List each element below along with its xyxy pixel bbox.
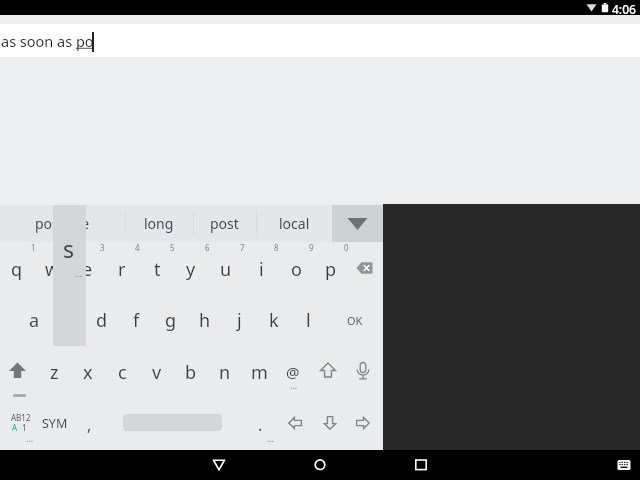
staticText: 8 [274, 242, 279, 253]
staticText: @ [286, 362, 300, 382]
button[interactable]: AB12 [4, 411, 40, 435]
button[interactable]: u [206, 254, 246, 284]
button[interactable] [312, 450, 328, 480]
button[interactable] [354, 260, 376, 276]
button[interactable]: z [34, 357, 74, 387]
button[interactable]: long [125, 205, 193, 242]
staticText: a [29, 308, 40, 333]
staticText: local [279, 214, 310, 233]
staticText: g [165, 308, 177, 333]
button[interactable]: post [193, 205, 256, 242]
staticText: v [152, 360, 162, 385]
button[interactable] [7, 361, 28, 401]
staticText: d [96, 308, 108, 333]
button[interactable]: g [151, 305, 191, 335]
button[interactable]: m [239, 357, 279, 387]
button[interactable] [413, 450, 429, 480]
staticText: n [219, 360, 231, 385]
button[interactable]: f [116, 305, 156, 335]
button[interactable]: p [311, 254, 351, 284]
button[interactable]: local [256, 205, 332, 242]
button[interactable]: b [171, 357, 211, 387]
staticText: 7 [240, 242, 245, 253]
staticText: r [118, 257, 126, 282]
button[interactable]: i [241, 254, 281, 284]
button[interactable]: v [137, 357, 177, 387]
staticText: 6 [205, 242, 210, 253]
button[interactable] [332, 205, 383, 242]
button[interactable]: as soon as po [0, 24, 640, 57]
staticText: y [186, 257, 196, 282]
button[interactable]: . [240, 410, 280, 440]
button[interactable] [285, 413, 305, 433]
staticText: w [45, 257, 60, 282]
staticText: h [199, 308, 211, 333]
button[interactable]: possible [0, 205, 125, 242]
staticText: e [82, 257, 93, 282]
button[interactable]: SYM [35, 408, 75, 438]
button[interactable]: OK [335, 305, 375, 335]
button[interactable]: , [69, 410, 109, 440]
button[interactable] [320, 413, 340, 433]
button[interactable]: l [288, 305, 328, 335]
button[interactable]: x [68, 357, 108, 387]
staticText: b [185, 360, 197, 385]
staticText: … [290, 379, 298, 391]
button[interactable]: e [67, 254, 107, 284]
staticText: l [306, 308, 311, 333]
button[interactable]: j [219, 305, 259, 335]
staticText: … [75, 267, 83, 279]
button[interactable]: r [102, 254, 142, 284]
staticText: A [12, 422, 18, 433]
staticText: OK [347, 313, 363, 328]
staticText: z [50, 360, 59, 385]
button[interactable]: c [102, 357, 142, 387]
staticText: 4:06 [612, 1, 636, 16]
staticText: k [269, 308, 279, 333]
button[interactable] [353, 413, 373, 433]
staticText: j [237, 308, 242, 333]
button[interactable]: w [32, 254, 72, 284]
staticText: 1 [31, 242, 36, 253]
button[interactable]: @ [273, 357, 313, 387]
staticText: m [251, 360, 268, 385]
button[interactable]: n [205, 357, 245, 387]
staticText: q [11, 257, 23, 282]
button[interactable] [318, 361, 338, 381]
staticText: … [26, 432, 34, 444]
staticText: x [83, 360, 93, 385]
staticText: s [63, 233, 75, 264]
staticText: o [291, 257, 302, 282]
staticText: 1 [22, 422, 27, 433]
staticText: post [210, 214, 239, 233]
button[interactable] [353, 361, 373, 382]
staticText: … [267, 432, 275, 444]
staticText: , [87, 414, 92, 436]
staticText: i [259, 257, 264, 282]
button[interactable]: k [254, 305, 294, 335]
button[interactable]: h [185, 305, 225, 335]
button[interactable]: t [137, 254, 177, 284]
staticText: 2 [66, 242, 71, 253]
button[interactable]: q [0, 254, 37, 284]
button[interactable]: d [82, 305, 122, 335]
staticText: f [133, 308, 140, 333]
staticText: c [118, 360, 127, 385]
staticText: u [220, 257, 232, 282]
button[interactable] [616, 450, 632, 480]
staticText: 3 [100, 242, 105, 253]
staticText: long [144, 214, 174, 233]
staticText: p [325, 257, 337, 282]
staticText: AB12 [11, 412, 31, 423]
button[interactable] [211, 450, 227, 480]
staticText: possible [35, 214, 90, 233]
button[interactable]: y [171, 254, 211, 284]
button[interactable]: o [276, 254, 316, 284]
staticText: t [154, 257, 161, 282]
staticText: . [258, 414, 263, 436]
staticText: 0 [344, 242, 349, 253]
button[interactable]: a [14, 305, 54, 335]
staticText: 4 [135, 242, 140, 253]
staticText: 9 [309, 242, 314, 253]
